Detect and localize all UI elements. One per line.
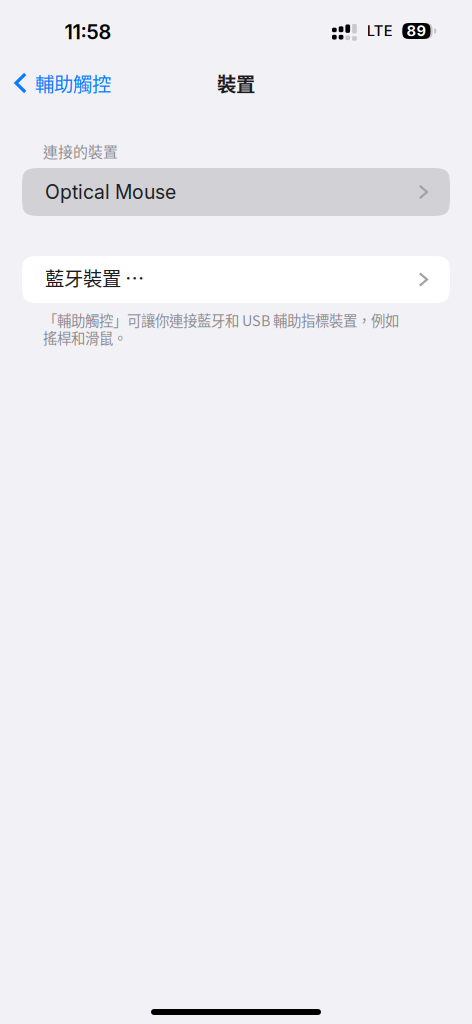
staticText: 11:58 <box>64 20 111 44</box>
staticText: 89 <box>406 22 426 40</box>
button[interactable]: Optical Mouse <box>22 168 450 216</box>
staticText: 藍牙裝置 ⋯ <box>45 263 144 291</box>
staticText: 「輔助觸控」可讓你連接藍牙和 USB 輔助指標裝置，例如 <box>43 310 399 330</box>
staticText: 輔助觸控 <box>35 69 111 97</box>
staticText: 連接的裝置 <box>43 140 118 162</box>
staticText: LTE <box>367 22 393 40</box>
staticText: 裝置 <box>217 69 255 97</box>
button[interactable]: 藍牙裝置 ⋯ <box>22 256 450 303</box>
staticText: 搖桿和滑鼠。 <box>43 327 127 348</box>
button[interactable]: 輔助觸控 <box>0 63 123 103</box>
staticText: Optical Mouse <box>45 180 176 204</box>
